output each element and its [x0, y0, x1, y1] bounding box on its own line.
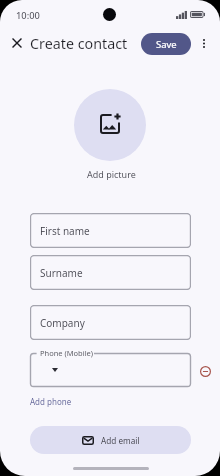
button[interactable]: Save	[141, 33, 191, 55]
staticText: Phone (Mobile)	[40, 348, 94, 358]
staticText: Add email	[101, 435, 140, 446]
staticText: Surname	[40, 266, 83, 280]
button[interactable]: Company	[30, 305, 191, 340]
button[interactable]: Add phone	[30, 396, 72, 407]
staticText: First name	[40, 224, 90, 238]
staticText: Save	[156, 38, 177, 51]
staticText: 10:00	[16, 9, 40, 22]
staticText: Company	[40, 316, 85, 330]
staticText: Create contact	[30, 34, 128, 53]
button[interactable]: Add picture	[74, 89, 146, 161]
staticText: Add phone	[30, 396, 72, 407]
staticText: Add picture	[87, 168, 136, 180]
button[interactable]: Add email	[30, 426, 191, 454]
button[interactable]	[30, 353, 191, 387]
button[interactable]: More options	[194, 30, 213, 57]
button[interactable]: First name	[30, 213, 191, 248]
button[interactable]: Remove phone	[194, 360, 216, 382]
button[interactable]: Surname	[30, 255, 191, 290]
button[interactable]: Close	[5, 30, 28, 53]
